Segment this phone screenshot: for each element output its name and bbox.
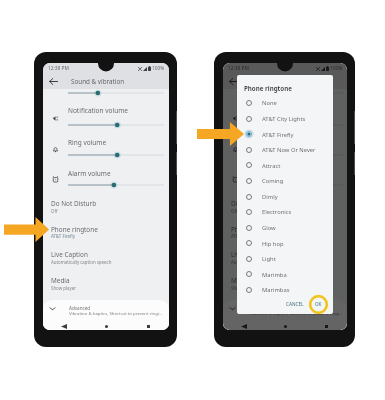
staticText: Marimbas [262,286,290,294]
staticText: Electronics [262,208,292,216]
staticText: OK [315,301,322,307]
staticText: Do Not Disturb [231,199,277,208]
button[interactable] [223,220,347,245]
staticText: Off [231,208,238,214]
staticText: AT&T Firefly [51,233,75,239]
staticText: 100% [330,65,343,72]
button[interactable] [237,142,333,158]
staticText: Light [262,255,276,263]
button[interactable] [223,102,347,132]
staticText: Live Caption [231,250,268,259]
button[interactable] [43,134,169,164]
staticText: Phone ringtone [231,225,278,234]
button[interactable] [223,164,347,194]
button[interactable] [237,282,333,298]
staticText: AT&T Firefly [231,233,255,239]
staticText: Dimly [262,193,278,201]
button[interactable] [43,272,169,297]
button[interactable] [237,158,333,174]
staticText: Do Not Disturb [51,199,97,208]
button[interactable]: Back [46,74,60,88]
button[interactable] [223,246,347,271]
button[interactable]: Advanced [43,300,169,330]
staticText: Vibration & haptics, Shortcut to prevent… [69,310,163,316]
staticText: Attract [262,162,281,170]
button[interactable]: Advanced [223,300,347,330]
button[interactable]: Back [223,321,265,330]
button[interactable]: CANCEL [281,298,309,310]
staticText: Ring volume [68,138,107,147]
button[interactable] [237,173,333,189]
staticText: Phone ringtone [51,225,98,234]
staticText: Phone ringtone [244,84,292,92]
button[interactable] [43,102,169,132]
staticText: Media [231,276,250,285]
staticText: AT&T City Lights [262,115,306,123]
staticText: Off [51,208,58,214]
staticText: Marimba [262,271,287,279]
button[interactable] [223,272,347,297]
staticText: Automatically caption speech [51,259,112,265]
staticText: Glow [262,224,276,232]
staticText: Vibration & haptics, Shortcut to prevent… [249,310,343,316]
staticText: Alarm volume [68,169,111,178]
staticText: Show player [231,285,257,291]
button[interactable]: Home [265,321,306,330]
staticText: Media [51,276,70,285]
button[interactable] [43,164,169,194]
staticText: Hip hop [262,240,284,248]
button[interactable] [223,195,347,220]
button[interactable] [237,111,333,127]
button[interactable] [237,236,333,252]
button[interactable] [43,220,169,245]
button[interactable] [223,134,347,164]
button[interactable] [237,96,333,112]
staticText: 12:38 PM [48,65,69,72]
button[interactable] [43,246,169,271]
staticText: None [262,99,277,107]
staticText: 100% [152,65,165,72]
button[interactable] [237,205,333,221]
other: pointer [197,122,244,146]
button[interactable]: Recent apps [127,321,169,330]
staticText: Notification volume [68,106,128,115]
button[interactable] [237,127,333,143]
button[interactable]: OK [311,298,325,310]
staticText: AT&T Firefly [262,131,294,139]
staticText: 12:38 PM [228,65,249,72]
staticText: Live Caption [51,250,88,259]
staticText: Advanced [69,305,91,311]
staticText: Show player [51,285,77,291]
button[interactable] [43,195,169,220]
button[interactable]: Back [43,321,85,330]
button[interactable] [237,251,333,267]
staticText: AT&T Now Or Never [262,146,316,154]
button[interactable] [237,189,333,205]
staticText: CANCEL [286,301,304,307]
button[interactable]: Home [85,321,127,330]
other: pointer [4,217,49,242]
button[interactable] [237,267,333,283]
staticText: Automatically caption speech [231,259,292,265]
staticText: Sound & vibration [71,77,125,86]
button[interactable]: Back [226,74,240,88]
staticText: Coming [262,177,284,185]
button[interactable] [237,220,333,236]
button[interactable]: Recent apps [306,321,347,330]
